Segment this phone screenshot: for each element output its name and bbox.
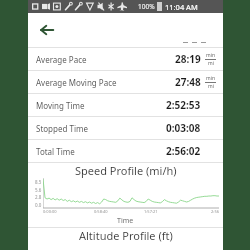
button[interactable]: Moving Time xyxy=(28,94,223,116)
button[interactable]: Total Time xyxy=(28,140,223,162)
staticText: 0.0 xyxy=(35,202,42,208)
staticText: 2:56:02 xyxy=(166,144,201,158)
staticText: Total Time xyxy=(36,146,75,157)
staticText: Altitude Profile (ft) xyxy=(79,228,173,243)
staticText: 2:52:53 xyxy=(166,98,201,112)
button[interactable]: Average Pace xyxy=(28,48,223,70)
staticText: Time xyxy=(117,216,134,226)
staticText: 28:19 xyxy=(175,52,201,66)
staticText: 2:56 xyxy=(194,209,219,214)
staticText: 5.6 xyxy=(35,187,42,193)
staticText: 0:03:08 xyxy=(166,121,201,135)
staticText: 11:04 AM xyxy=(165,2,198,12)
staticText: mi xyxy=(208,60,214,67)
staticText: Speed Profile (mi/h) xyxy=(75,163,177,178)
button[interactable]: Average Moving Pace xyxy=(28,71,223,93)
staticText: min xyxy=(206,75,216,82)
staticText: 8.5 xyxy=(35,179,42,185)
staticText: min xyxy=(206,52,216,59)
staticText: Moving Time xyxy=(36,100,85,111)
button[interactable]: Back xyxy=(34,17,60,43)
staticText: Average Pace xyxy=(36,54,87,65)
staticText: Stopped Time xyxy=(36,123,88,134)
staticText: 0:00:00 xyxy=(43,209,94,214)
button[interactable]: Stopped Time xyxy=(28,117,223,139)
staticText: 2.8 xyxy=(35,194,42,200)
staticText: 1:57:21 xyxy=(144,209,194,214)
staticText: Average Moving Pace xyxy=(36,77,117,88)
staticText: 27:48 xyxy=(175,75,201,89)
staticText: mi xyxy=(208,83,214,90)
staticText: 100% xyxy=(138,2,155,11)
staticText: 0:58:40 xyxy=(94,209,144,214)
